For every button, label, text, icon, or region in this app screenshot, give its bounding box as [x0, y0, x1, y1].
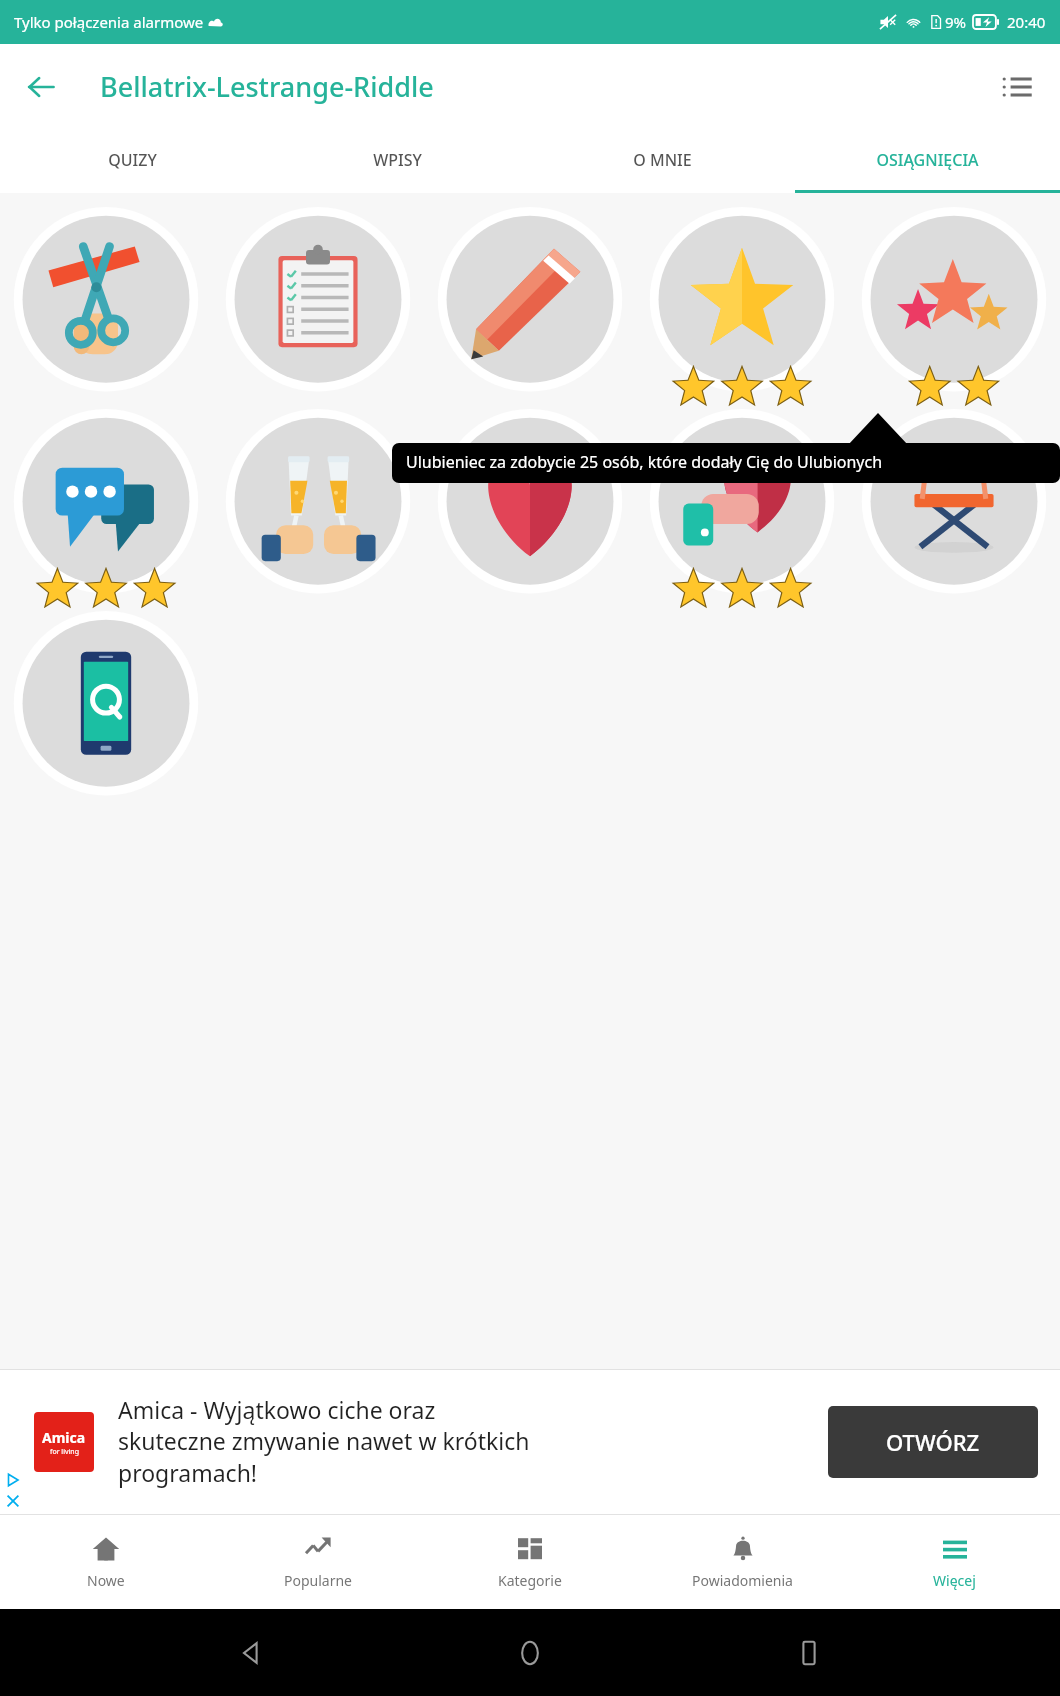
button[interactable]: Achievement: checklist — [212, 193, 424, 395]
staticText: Tylko połączenia alarmowe — [14, 12, 204, 32]
staticText: Kategorie — [498, 1571, 562, 1590]
staticText: Powiadomienia — [692, 1571, 793, 1590]
button[interactable]: O MNIE — [530, 129, 795, 190]
staticText: 9% — [945, 12, 967, 32]
button[interactable]: Achievement: heart — [424, 395, 636, 597]
button[interactable]: Achievement: mobile quiz — [0, 597, 212, 799]
button[interactable]: Więcej — [848, 1514, 1060, 1609]
button[interactable]: Achievement: ribbon — [0, 193, 212, 395]
button[interactable]: Achievement: comments — [0, 395, 212, 597]
staticText: Amica — [42, 1428, 86, 1447]
staticText: O MNIE — [633, 149, 692, 171]
staticText: Ulubieniec za zdobycie 25 osób, które do… — [406, 451, 883, 473]
button[interactable]: Achievement: cheers — [212, 395, 424, 597]
button[interactable]: Achievement: star — [636, 193, 848, 395]
button[interactable]: Achievement: pencil — [424, 193, 636, 395]
button[interactable]: List options — [988, 58, 1046, 116]
button[interactable]: Home — [502, 1625, 558, 1681]
staticText: OTWÓRZ — [886, 1427, 980, 1457]
button[interactable]: Powiadomienia — [636, 1514, 848, 1609]
button[interactable]: Recents — [781, 1625, 837, 1681]
button[interactable]: Ad info — [4, 1471, 22, 1489]
button[interactable]: Achievement: favourite — [848, 193, 1060, 395]
button[interactable]: QUIZY — [0, 129, 265, 190]
button[interactable]: Kategorie — [424, 1514, 636, 1609]
staticText: QUIZY — [108, 149, 157, 171]
button[interactable]: WPISY — [265, 129, 530, 190]
button[interactable]: Nowe — [0, 1514, 212, 1609]
staticText: WPISY — [373, 149, 422, 171]
button[interactable]: Back — [12, 58, 70, 116]
staticText: Nowe — [87, 1571, 125, 1590]
button[interactable]: Popularne — [212, 1514, 424, 1609]
button[interactable]: OTWÓRZ — [828, 1406, 1038, 1478]
button[interactable]: Achievement: director chair — [848, 395, 1060, 597]
button[interactable]: Back — [223, 1625, 279, 1681]
staticText: Więcej — [933, 1571, 976, 1590]
staticText: for living — [50, 1447, 79, 1457]
staticText: Bellatrix-Lestrange-Riddle — [100, 68, 434, 105]
button[interactable]: Achievement: giving heart — [636, 395, 848, 597]
button[interactable]: OSIĄGNIĘCIA — [795, 129, 1060, 190]
staticText: 20:40 — [1007, 12, 1046, 32]
staticText: Popularne — [284, 1571, 352, 1590]
button[interactable]: Close ad — [4, 1492, 22, 1510]
staticText: OSIĄGNIĘCIA — [876, 149, 979, 171]
staticText: Amica - Wyjątkowo ciche oraz skuteczne z… — [118, 1394, 816, 1489]
